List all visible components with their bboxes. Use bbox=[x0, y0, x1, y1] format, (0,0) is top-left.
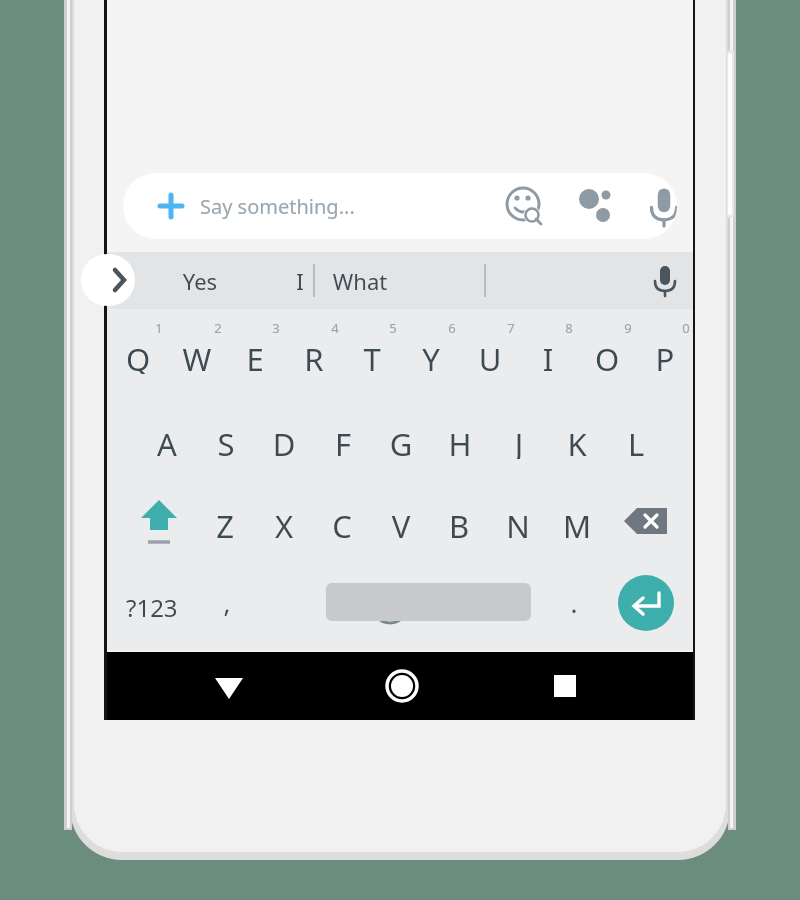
staticText: Yes bbox=[150, 266, 250, 296]
button[interactable]: E bbox=[226, 326, 284, 384]
button[interactable]: F bbox=[314, 411, 372, 469]
staticText: H bbox=[431, 423, 489, 459]
staticText: 1 bbox=[149, 319, 169, 339]
staticText: O bbox=[578, 338, 636, 374]
staticText: D bbox=[255, 423, 313, 459]
button[interactable]: Back bbox=[205, 662, 253, 710]
staticText: 9 bbox=[618, 319, 638, 339]
staticText: G bbox=[372, 423, 430, 459]
staticText: X bbox=[255, 505, 313, 541]
button[interactable]: , bbox=[198, 573, 256, 631]
staticText: 6 bbox=[442, 319, 462, 339]
staticText: Q bbox=[109, 338, 167, 374]
button[interactable]: Backspace bbox=[612, 489, 680, 553]
button[interactable]: Yes bbox=[150, 252, 250, 309]
staticText: B bbox=[430, 505, 488, 541]
button[interactable]: D bbox=[255, 411, 313, 469]
button[interactable]: Expand suggestions bbox=[81, 254, 135, 306]
button[interactable]: W bbox=[168, 326, 226, 384]
staticText: I bbox=[519, 338, 577, 374]
button[interactable]: Emoji bbox=[362, 577, 418, 633]
staticText: 8 bbox=[559, 319, 579, 339]
staticText: What bbox=[310, 266, 410, 296]
staticText: 7 bbox=[501, 319, 521, 339]
staticText: N bbox=[489, 505, 547, 541]
staticText: J bbox=[490, 423, 548, 459]
button[interactable]: Say something... bbox=[123, 173, 677, 239]
button[interactable]: C bbox=[313, 493, 371, 551]
button[interactable]: K bbox=[548, 411, 606, 469]
staticText: I bbox=[250, 266, 350, 296]
button[interactable]: L bbox=[607, 411, 665, 469]
staticText: R bbox=[285, 338, 343, 374]
button[interactable]: M bbox=[548, 493, 606, 551]
staticText: 5 bbox=[383, 319, 403, 339]
button[interactable]: I bbox=[250, 252, 350, 309]
staticText: 4 bbox=[325, 319, 345, 339]
staticText: 0 bbox=[676, 319, 696, 339]
staticText: V bbox=[372, 505, 430, 541]
staticText: S bbox=[197, 423, 255, 459]
button[interactable]: ?123 bbox=[113, 574, 191, 636]
button[interactable]: X bbox=[255, 493, 313, 551]
button[interactable]: J bbox=[490, 411, 548, 469]
button[interactable]: Q bbox=[109, 326, 167, 384]
button[interactable]: What bbox=[310, 252, 410, 309]
button[interactable]: Enter bbox=[618, 575, 674, 631]
button[interactable]: I bbox=[519, 326, 577, 384]
button[interactable]: Home bbox=[376, 660, 428, 712]
staticText: Z bbox=[196, 505, 254, 541]
button[interactable]: U bbox=[461, 326, 519, 384]
button[interactable]: T bbox=[343, 326, 401, 384]
staticText: Y bbox=[402, 338, 460, 374]
staticText: K bbox=[548, 423, 606, 459]
button[interactable]: Y bbox=[402, 326, 460, 384]
button[interactable]: P bbox=[636, 326, 694, 384]
staticText: T bbox=[343, 338, 401, 374]
staticText: M bbox=[548, 505, 606, 541]
button[interactable]: G bbox=[372, 411, 430, 469]
button[interactable]: O bbox=[578, 326, 636, 384]
staticText: L bbox=[607, 423, 665, 459]
button[interactable]: R bbox=[285, 326, 343, 384]
staticText: E bbox=[226, 338, 284, 374]
staticText: . bbox=[545, 585, 603, 621]
staticText: C bbox=[313, 505, 371, 541]
staticText: , bbox=[198, 585, 256, 621]
button[interactable]: S bbox=[197, 411, 255, 469]
staticText: ?123 bbox=[126, 591, 178, 624]
button[interactable]: Shift bbox=[125, 489, 193, 553]
staticText: P bbox=[636, 338, 694, 374]
staticText: A bbox=[138, 423, 196, 459]
button[interactable]: B bbox=[430, 493, 488, 551]
button[interactable]: N bbox=[489, 493, 547, 551]
button[interactable]: A bbox=[138, 411, 196, 469]
button[interactable]: V bbox=[372, 493, 430, 551]
staticText: Say something... bbox=[200, 193, 355, 220]
button[interactable]: . bbox=[545, 573, 603, 631]
staticText: 3 bbox=[266, 319, 286, 339]
staticText: U bbox=[461, 338, 519, 374]
staticText: F bbox=[314, 423, 372, 459]
button[interactable]: H bbox=[431, 411, 489, 469]
button[interactable]: Recents bbox=[541, 662, 589, 710]
staticText: 2 bbox=[208, 319, 228, 339]
button[interactable]: Z bbox=[196, 493, 254, 551]
staticText: W bbox=[168, 338, 226, 374]
